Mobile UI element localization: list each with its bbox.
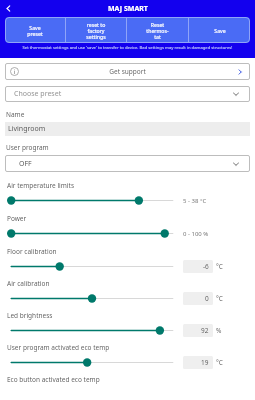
button[interactable]: Get support (5, 63, 250, 80)
staticText: -6 (203, 262, 209, 271)
staticText: Livingroom (8, 124, 46, 134)
staticText: 0 (205, 294, 209, 303)
staticText: Get support (19, 67, 236, 76)
staticText: °C (216, 358, 223, 367)
button[interactable]: reset to factory settings (66, 17, 126, 43)
staticText: °C (216, 294, 223, 303)
staticText: Floor calibration (7, 247, 57, 256)
staticText: Choose preset (14, 89, 62, 99)
staticText: Eco button activated eco temp (7, 375, 100, 384)
staticText: Air temperature limits (7, 181, 75, 190)
staticText: Power (7, 214, 27, 223)
staticText: Set thermostat settings and use 'save' t… (10, 45, 245, 51)
staticText: Name (6, 110, 25, 119)
button[interactable]: Save (189, 17, 250, 43)
button[interactable]: Livingroom (5, 122, 250, 136)
staticText: reset to factory settings (86, 21, 106, 40)
staticText: Save (214, 27, 226, 34)
staticText: 19 (201, 358, 209, 367)
staticText: User program activated eco temp (7, 343, 110, 352)
staticText: 0 - 100 % (183, 230, 209, 238)
staticText: Led brightness (7, 311, 53, 320)
staticText: °C (216, 262, 223, 271)
staticText: Save preset (27, 24, 43, 37)
button[interactable]: OFF (5, 155, 250, 172)
staticText: Air calibration (7, 279, 50, 288)
staticText: 5 - 38 °C (183, 197, 207, 205)
staticText: Reset thermos- tat (146, 21, 169, 40)
button[interactable]: Choose preset (5, 86, 250, 102)
staticText: MAJ SMART (108, 4, 148, 14)
button[interactable]: Back (0, 0, 17, 17)
staticText: OFF (19, 159, 32, 169)
button[interactable]: Save preset (5, 17, 65, 43)
button[interactable]: Reset thermos- tat (127, 17, 188, 43)
staticText: 92 (201, 326, 209, 335)
staticText: % (216, 326, 222, 335)
staticText: User program (6, 143, 49, 152)
